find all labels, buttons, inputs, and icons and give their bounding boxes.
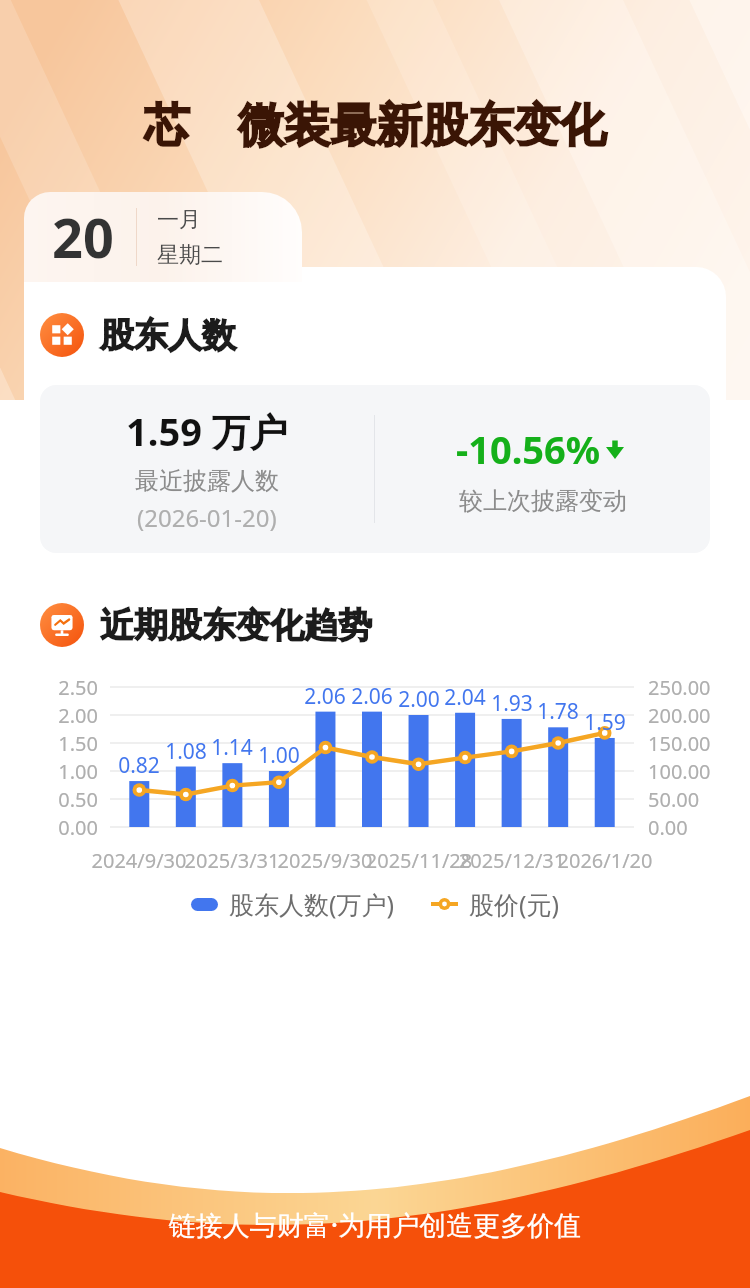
staticText: 近期股东变化趋势: [100, 604, 372, 647]
button[interactable]: 股东人数: [40, 313, 726, 357]
staticText: 2026/1/20: [545, 847, 665, 874]
staticText: 较上次披露变动: [459, 486, 627, 516]
staticText: 2025/9/30: [265, 847, 385, 874]
staticText: 1.59 万户: [126, 405, 288, 457]
button[interactable]: 近期股东变化趋势: [40, 603, 726, 647]
staticText: 一月: [157, 206, 201, 234]
staticText: 150.00: [648, 730, 711, 757]
staticText: 2.00: [391, 685, 447, 714]
staticText: 链接人与财富·为用户创造更多价值: [0, 1206, 750, 1243]
staticText: 芯 微装最新股东变化: [0, 92, 750, 155]
staticText: 200.00: [648, 702, 711, 729]
button[interactable]: 20: [24, 192, 302, 282]
staticText: 股东人数: [100, 314, 236, 357]
staticText: 1.14: [204, 733, 260, 762]
staticText: 50.00: [648, 786, 700, 813]
staticText: 0.50: [32, 786, 98, 813]
staticText: 1.00: [251, 741, 307, 770]
staticText: 2.04: [437, 683, 493, 712]
staticText: 1.08: [158, 737, 214, 766]
staticText: 250.00: [648, 674, 711, 701]
staticText: 2025/12/31: [452, 847, 572, 874]
staticText: 2.50: [32, 674, 98, 701]
staticText: 100.00: [648, 758, 711, 785]
staticText: 20: [52, 200, 114, 274]
staticText: 2.06: [344, 682, 400, 711]
button[interactable]: 1.59 万户: [40, 385, 710, 553]
staticText: 2.06: [297, 682, 353, 711]
staticText: 0.00: [32, 814, 98, 841]
staticText: 1.59: [577, 708, 633, 737]
staticText: 0.00: [648, 814, 688, 841]
staticText: 股价(元): [469, 887, 560, 921]
staticText: (2026-01-20): [137, 501, 277, 534]
staticText: 2025/11/28: [359, 847, 479, 874]
staticText: 股东人数(万户): [229, 887, 395, 921]
staticText: 1.93: [484, 689, 540, 718]
staticText: 最近披露人数: [135, 466, 279, 496]
staticText: 2024/9/30: [79, 847, 199, 874]
staticText: -10.56%: [456, 423, 601, 475]
other: 近期股东变化趋势: [40, 603, 84, 647]
staticText: 1.78: [530, 697, 586, 726]
staticText: 星期二: [157, 241, 223, 269]
staticText: 2.00: [32, 702, 98, 729]
staticText: 2025/3/31: [172, 847, 292, 874]
staticText: 1.50: [32, 730, 98, 757]
other: 股东人数: [40, 313, 84, 357]
staticText: 0.82: [111, 751, 167, 780]
staticText: 1.00: [32, 758, 98, 785]
